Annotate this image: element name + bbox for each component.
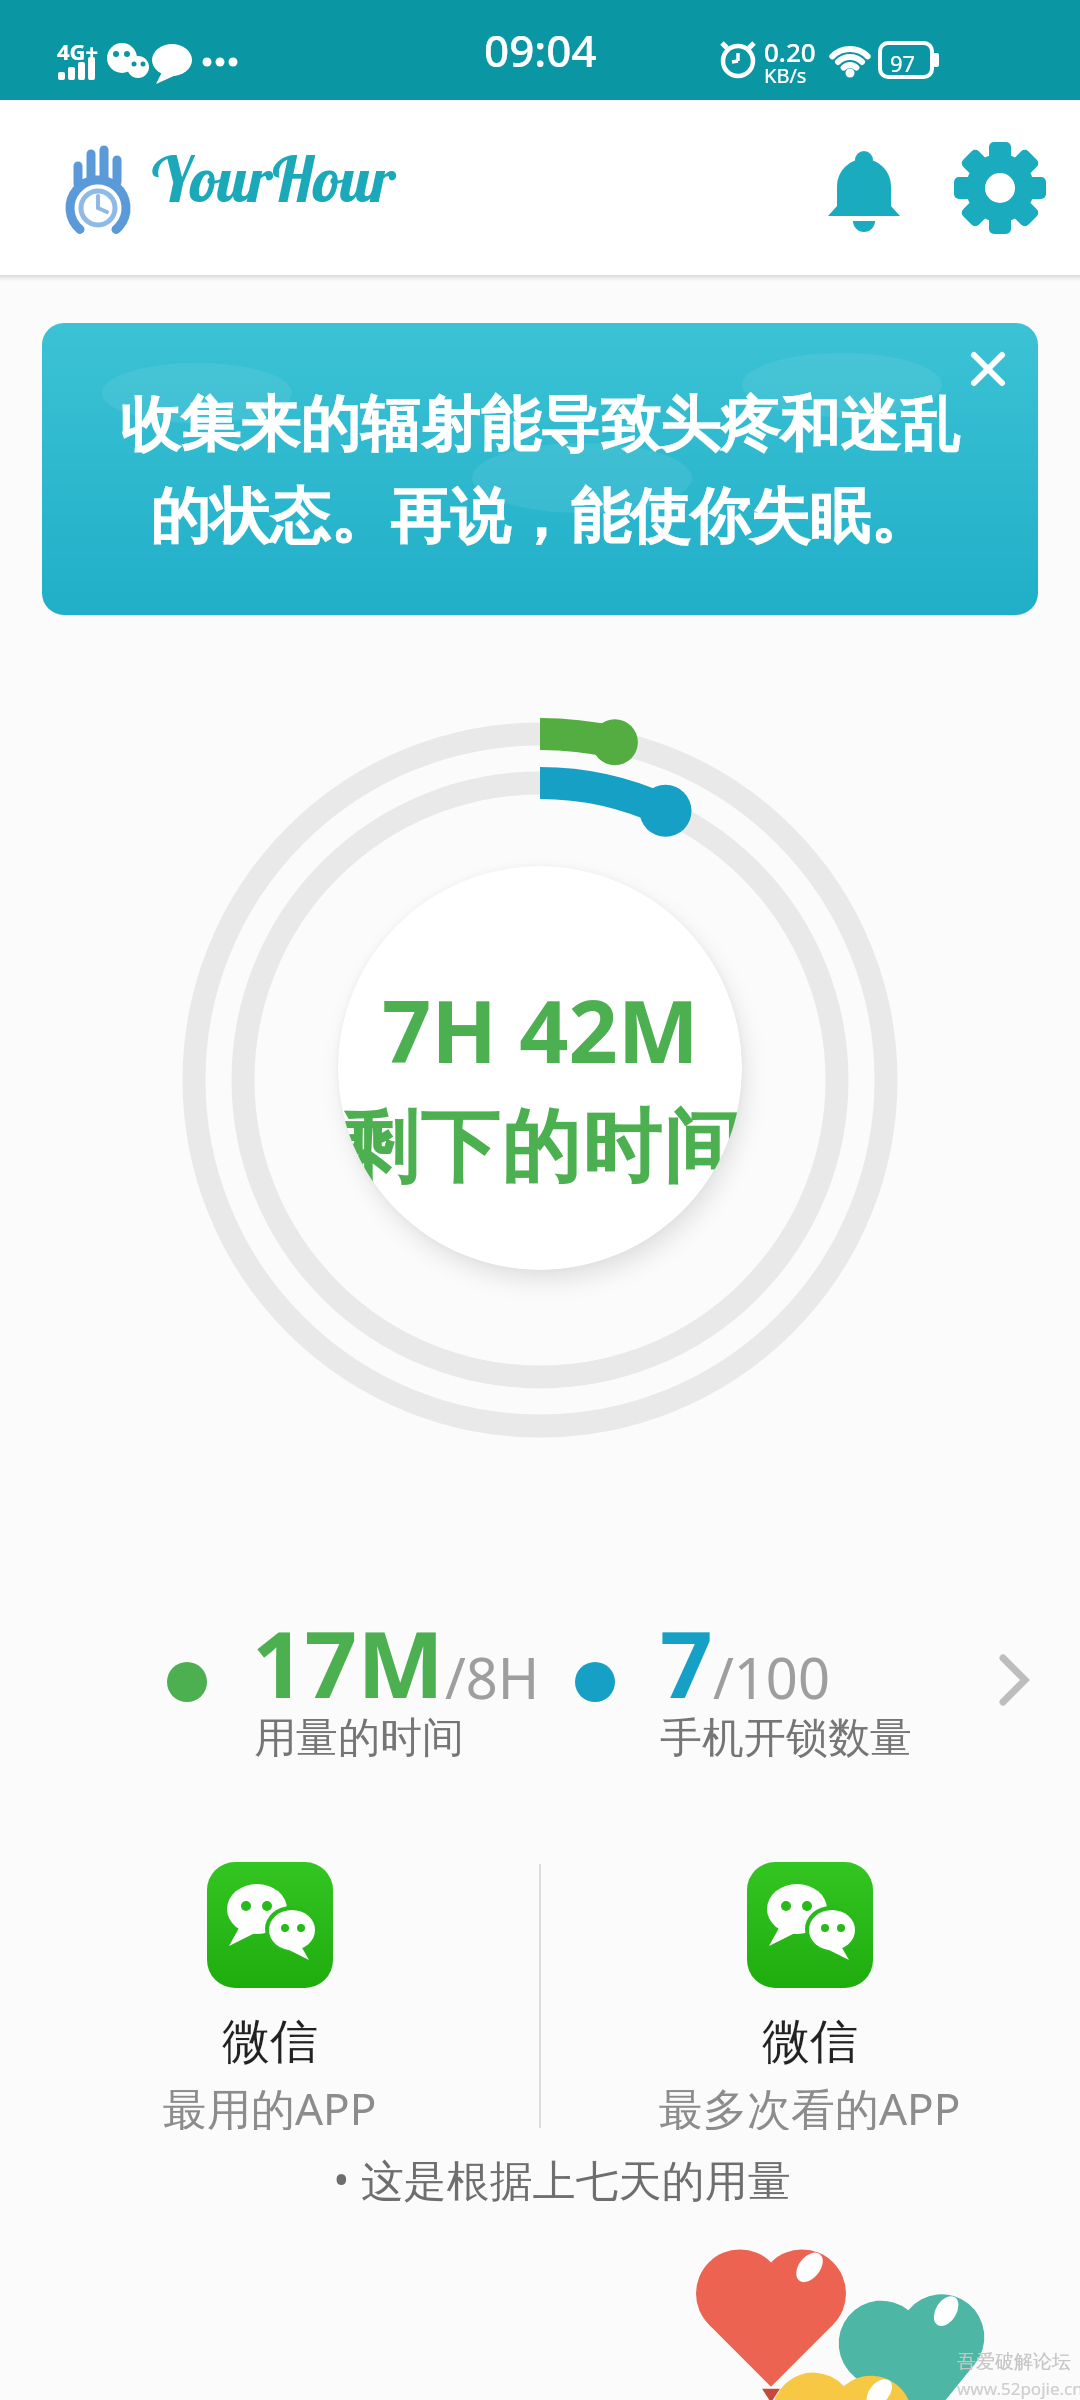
staticText: 97: [890, 48, 916, 78]
staticText: 手机开锁数量: [660, 1712, 912, 1765]
staticText: 09:04: [484, 20, 597, 80]
button[interactable]: 微信: [580, 1862, 1040, 2130]
staticText: /100: [713, 1639, 830, 1715]
staticText: • 这是根据上七天的用量: [22, 2150, 1080, 2209]
staticText: 的状态。再说，能使你失眠。: [150, 479, 930, 555]
staticText: 4G+: [57, 36, 99, 66]
staticText: 微信: [762, 2012, 858, 2072]
staticText: 7H 42M: [382, 971, 699, 1088]
staticText: 7: [660, 1600, 713, 1725]
staticText: 最多次看的APP: [659, 2078, 961, 2130]
button[interactable]: 17M: [0, 1600, 1080, 1770]
button[interactable]: [960, 341, 1016, 397]
staticText: /8H: [445, 1639, 540, 1715]
staticText: 0.20: [764, 34, 816, 69]
staticText: YourHour: [152, 140, 396, 218]
button[interactable]: 收集来的辐射能导致头疼和迷乱: [42, 323, 1038, 615]
staticText: 剩下的时间: [338, 1098, 742, 1198]
button[interactable]: [950, 138, 1050, 238]
staticText: www.52pojie.cn: [957, 2377, 1080, 2400]
button[interactable]: [816, 140, 912, 236]
staticText: KB/s: [764, 62, 807, 89]
staticText: 收集来的辐射能导致头疼和迷乱: [120, 387, 960, 463]
staticText: 用量的时间: [254, 1712, 464, 1765]
staticText: 17M: [252, 1600, 445, 1725]
button[interactable]: 微信: [40, 1862, 500, 2130]
staticText: 最用的APP: [163, 2078, 377, 2130]
staticText: 微信: [222, 2012, 318, 2072]
staticText: 吾爱破解论坛: [957, 2350, 1071, 2374]
